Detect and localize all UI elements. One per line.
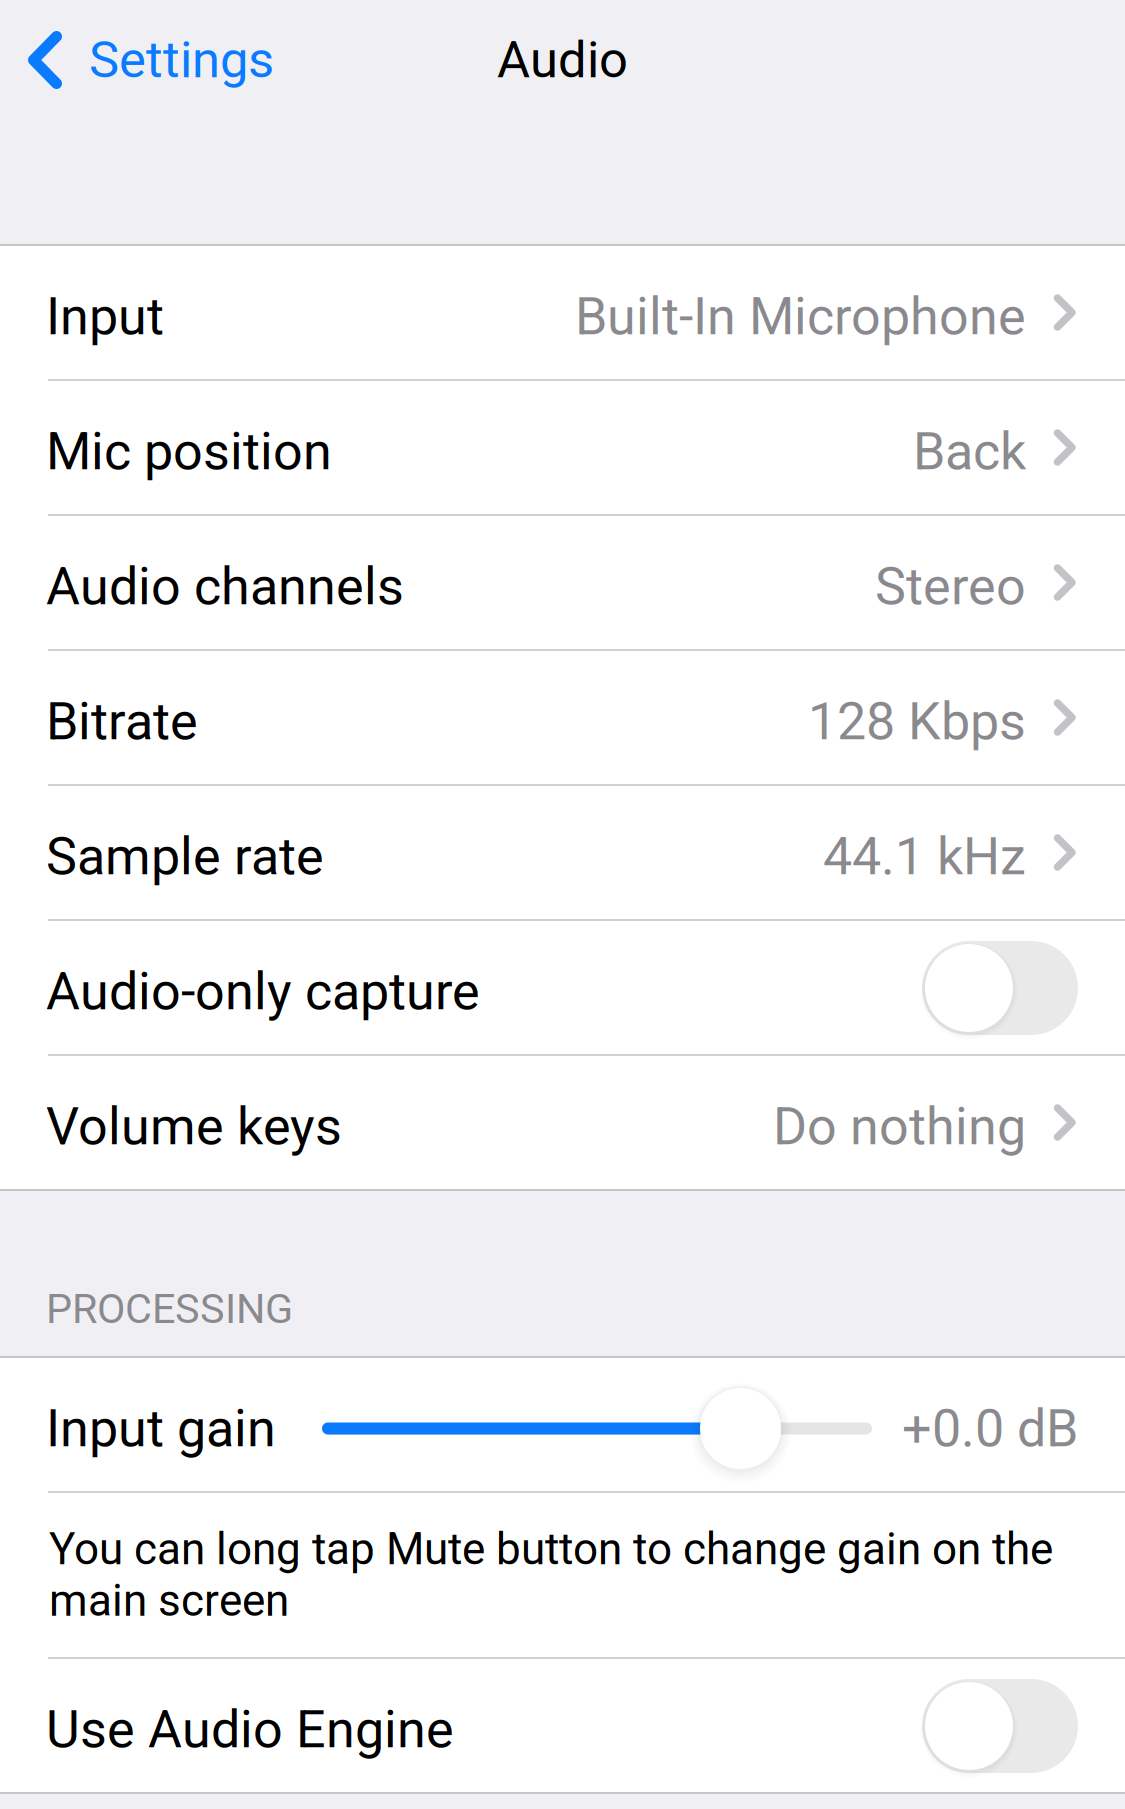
staticText: Audio — [497, 30, 628, 90]
staticText: You can long tap Mute button to change g… — [49, 1523, 1053, 1626]
staticText: 128 Kbps — [808, 691, 1026, 752]
staticText: Built-In Microphone — [575, 286, 1026, 347]
staticText: Do nothing — [773, 1096, 1026, 1157]
staticText: Input — [46, 286, 164, 347]
staticText: Stereo — [875, 556, 1026, 617]
staticText: Back — [913, 421, 1026, 482]
staticText: Audio channels — [46, 556, 404, 617]
staticText: PROCESSING — [46, 1285, 293, 1333]
staticText: Audio-only capture — [46, 961, 480, 1022]
staticText: Use Audio Engine — [46, 1699, 454, 1760]
button[interactable]: Audio channels — [0, 516, 1125, 649]
staticText: +0.0 dB — [902, 1398, 1078, 1459]
button[interactable]: Volume keys — [0, 1056, 1125, 1189]
button[interactable]: Sample rate — [0, 786, 1125, 919]
staticText: Input gain — [46, 1398, 276, 1459]
staticText: Sample rate — [46, 826, 324, 887]
button[interactable]: Input — [0, 246, 1125, 379]
button[interactable]: Mic position — [0, 381, 1125, 514]
button[interactable]: Settings — [0, 0, 294, 120]
staticText: Settings — [89, 30, 274, 90]
button[interactable]: Use Audio Engine — [0, 1659, 1125, 1792]
button[interactable]: Bitrate — [0, 651, 1125, 784]
staticText: Mic position — [46, 421, 332, 482]
staticText: Volume keys — [46, 1096, 342, 1157]
button[interactable]: Audio-only capture — [0, 921, 1125, 1054]
staticText: 44.1 kHz — [823, 826, 1026, 887]
staticText: Bitrate — [46, 691, 198, 752]
